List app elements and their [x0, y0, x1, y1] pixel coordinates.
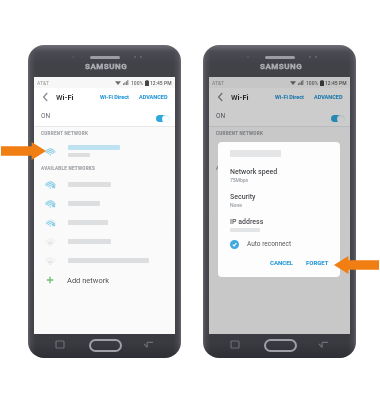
button[interactable] [34, 232, 175, 251]
staticText: Wi-Fi Direct [275, 94, 304, 100]
staticText: AVAILABLE NETWORKS [216, 166, 271, 171]
button[interactable]: Add network [34, 270, 175, 290]
button[interactable]: Wi-Fi Direct [273, 91, 306, 103]
staticText: 12:45 PM [150, 80, 172, 86]
button[interactable]: Wi-Fi Direct [98, 91, 131, 103]
staticText: Network speed [230, 168, 278, 176]
button[interactable] [34, 140, 175, 162]
button[interactable]: ADVANCED [137, 91, 170, 103]
button[interactable] [209, 140, 350, 162]
staticText: ADVANCED [139, 94, 168, 100]
staticText: SAMSUNG [260, 62, 303, 71]
button[interactable]: Wi-Fi toggle [156, 111, 169, 122]
staticText: Add network [67, 276, 110, 285]
button[interactable]: Back [37, 88, 53, 106]
staticText: 75Mbps [230, 177, 249, 183]
staticText: CURRENT NETWORK [41, 131, 89, 136]
staticText: Auto reconnect [247, 240, 292, 248]
staticText: ON [216, 112, 226, 120]
staticText: CURRENT NETWORK [216, 131, 264, 136]
staticText: AVAILABLE NETWORKS [41, 166, 96, 171]
staticText: None [230, 202, 242, 208]
button[interactable]: ADVANCED [312, 91, 345, 103]
button[interactable] [34, 175, 175, 194]
staticText: SAMSUNG [85, 62, 128, 71]
button[interactable]: Wi-Fi toggle [331, 111, 344, 122]
staticText: AT&T [37, 80, 50, 86]
button[interactable]: FORGET [303, 257, 332, 268]
button[interactable] [209, 213, 350, 232]
staticText: 12:45 PM [325, 80, 347, 86]
staticText: 100% [131, 80, 144, 86]
button[interactable]: CANCEL [267, 257, 296, 268]
staticText: ADVANCED [314, 94, 343, 100]
staticText: FORGET [306, 259, 329, 266]
staticText: ON [41, 112, 51, 120]
button[interactable]: Back [212, 88, 228, 106]
staticText: AT&T [212, 80, 225, 86]
staticText: Wi-Fi Direct [100, 94, 129, 100]
staticText: IP address [230, 218, 264, 226]
button[interactable] [209, 194, 350, 213]
staticText: CANCEL [270, 259, 293, 266]
button[interactable] [34, 251, 175, 270]
staticText: Security [230, 193, 256, 201]
staticText: Wi-Fi [231, 93, 249, 102]
staticText: 100% [306, 80, 319, 86]
button[interactable] [209, 175, 350, 194]
button[interactable] [34, 194, 175, 213]
staticText: Wi-Fi [56, 93, 74, 102]
button[interactable]: Auto reconnect [230, 238, 292, 250]
button[interactable] [34, 213, 175, 232]
